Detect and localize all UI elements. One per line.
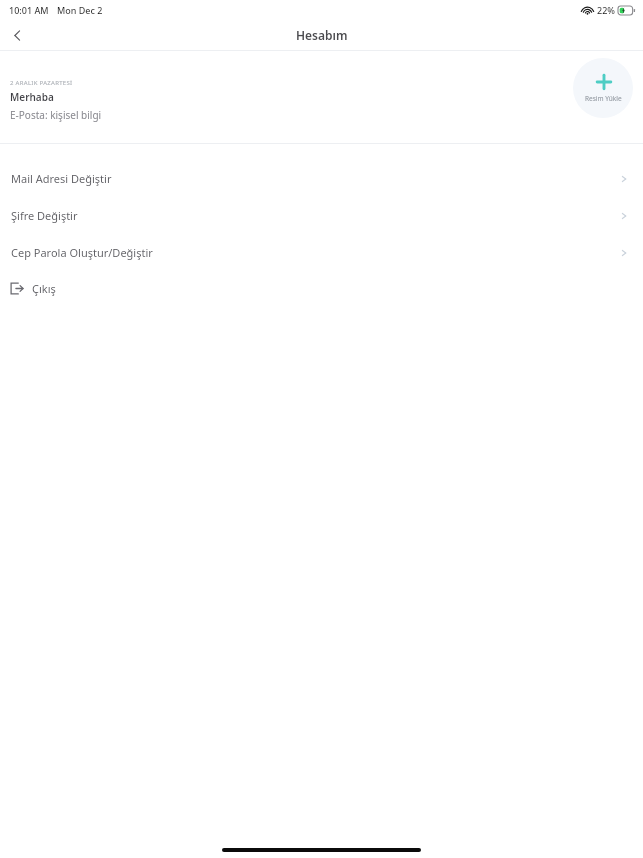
button[interactable]: Resim Yükle bbox=[573, 58, 633, 118]
staticText: Şifre Değiştir bbox=[11, 208, 78, 223]
button[interactable]: Şifre Değiştir bbox=[0, 197, 643, 234]
staticText: Resim Yükle bbox=[585, 94, 622, 103]
button[interactable]: Mail Adresi Değiştir bbox=[0, 160, 643, 197]
staticText: Mail Adresi Değiştir bbox=[11, 171, 112, 186]
staticText: Cep Parola Oluştur/Değiştir bbox=[11, 245, 153, 260]
button[interactable]: Back bbox=[0, 20, 34, 50]
staticText: E-Posta: kişisel bilgi bbox=[10, 108, 102, 122]
staticText: Merhaba bbox=[10, 90, 54, 104]
staticText: 2 ARALIK PAZARTESİ bbox=[10, 79, 73, 87]
staticText: Hesabım bbox=[296, 27, 348, 43]
staticText: Mon Dec 2 bbox=[57, 4, 103, 16]
staticText: 22% bbox=[597, 4, 615, 16]
button[interactable]: Cep Parola Oluştur/Değiştir bbox=[0, 234, 643, 271]
staticText: Çıkış bbox=[32, 281, 56, 296]
staticText: 10:01 AM bbox=[9, 4, 49, 16]
button[interactable]: Çıkış bbox=[0, 271, 643, 305]
